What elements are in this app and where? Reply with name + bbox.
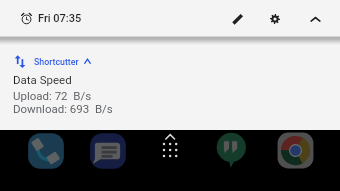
staticText: Download: 693 B/s (13, 102, 113, 115)
button[interactable]: Fri 07:35 (0, 0, 340, 37)
button[interactable]: Settings (261, 5, 289, 33)
button[interactable]: Shortcutter (15, 55, 91, 68)
button[interactable]: Collapse (301, 5, 329, 33)
button[interactable]: Phone (27, 132, 65, 170)
button[interactable]: All apps (159, 131, 181, 159)
button[interactable]: Chrome (277, 132, 314, 169)
button[interactable]: Edit (224, 5, 252, 33)
button[interactable]: Messages (89, 132, 127, 170)
staticText: Fri 07:35 (38, 12, 82, 25)
button[interactable]: Hangouts (214, 131, 252, 169)
staticText: Data Speed (13, 73, 72, 86)
staticText: Shortcutter (34, 57, 79, 67)
staticText: Upload: 72 B/s (13, 89, 92, 102)
